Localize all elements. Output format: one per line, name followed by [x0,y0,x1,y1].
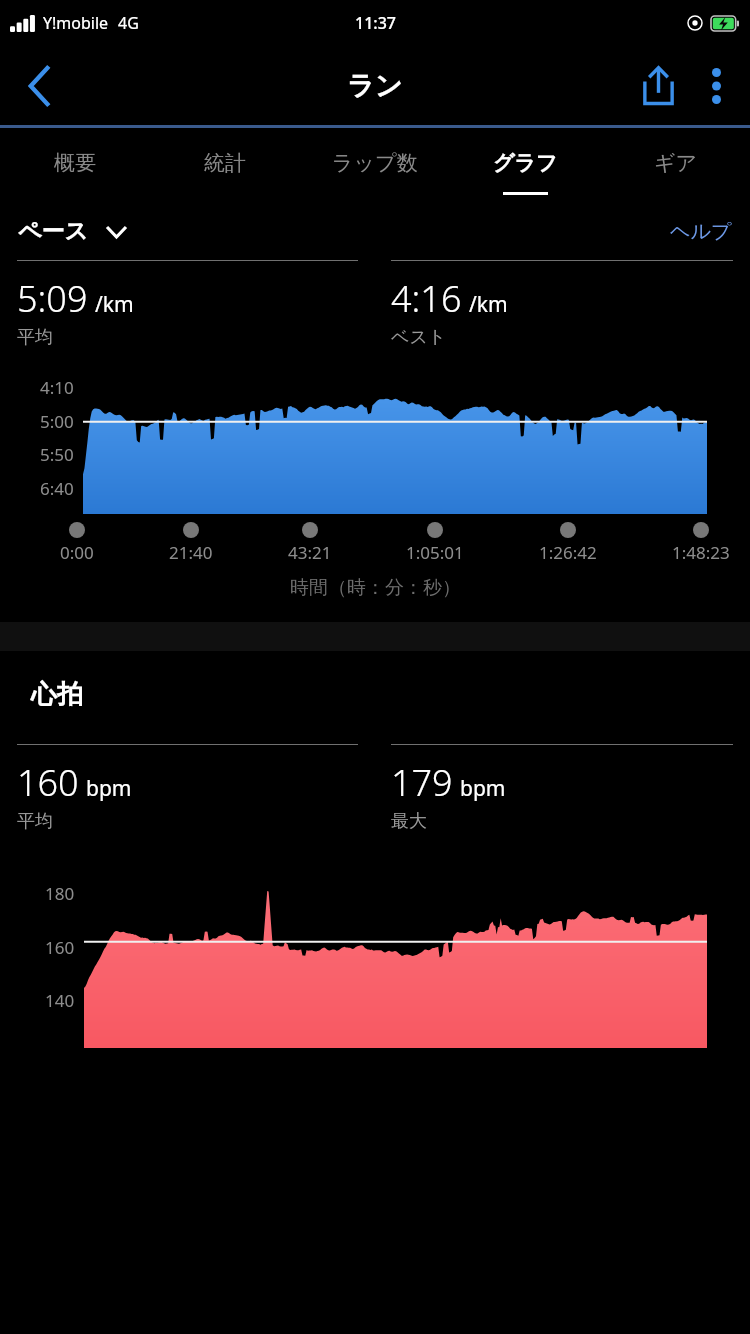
staticText: 5:00 [40,410,74,433]
staticText: 4:10 [40,376,74,399]
staticText: 平均 [17,810,53,833]
staticText: 43:21 [288,541,332,564]
button[interactable]: 統計 [150,128,300,210]
staticText: ギア [654,150,697,176]
staticText: 0:00 [60,541,94,564]
button[interactable]: More options [690,60,742,112]
staticText: 1:26:42 [539,541,597,564]
button[interactable]: ヘルプ [670,219,732,244]
staticText: 最大 [391,810,427,833]
staticText: bpm [86,774,132,803]
staticText: ラン [347,69,403,103]
staticText: 21:40 [169,541,213,564]
staticText: 11:37 [355,12,396,34]
staticText: /km [95,290,134,319]
staticText: ペース [18,217,89,246]
staticText: 統計 [204,150,246,176]
staticText: ベスト [391,326,447,349]
staticText: 140 [45,989,75,1012]
staticText: 180 [45,882,75,905]
button[interactable]: Back [0,46,78,125]
staticText: /km [469,290,508,319]
button[interactable]: 概要 [0,128,150,210]
staticText: 5:09 [17,274,88,323]
staticText: 平均 [17,326,53,349]
button[interactable]: ラップ数 [300,128,450,210]
staticText: 160 [45,936,75,959]
button[interactable]: グラフ [450,128,600,210]
staticText: 179 [391,758,453,807]
staticText: ラップ数 [332,150,418,176]
staticText: 160 [17,758,79,807]
staticText: 5:50 [40,443,74,466]
staticText: ヘルプ [670,219,732,244]
staticText: 時間（時：分：秒） [290,576,461,600]
staticText: bpm [460,774,506,803]
staticText: 4:16 [391,274,462,323]
staticText: 4G [118,12,139,34]
staticText: 1:48:23 [672,541,730,564]
staticText: グラフ [493,150,558,176]
staticText: 概要 [54,150,96,176]
staticText: Y!mobile [43,12,109,34]
staticText: 心拍 [31,678,83,711]
button[interactable]: Share [626,54,690,118]
staticText: 1:05:01 [406,541,464,564]
button[interactable]: ペース [18,217,127,246]
staticText: 6:40 [40,477,74,500]
button[interactable]: ギア [600,128,750,210]
